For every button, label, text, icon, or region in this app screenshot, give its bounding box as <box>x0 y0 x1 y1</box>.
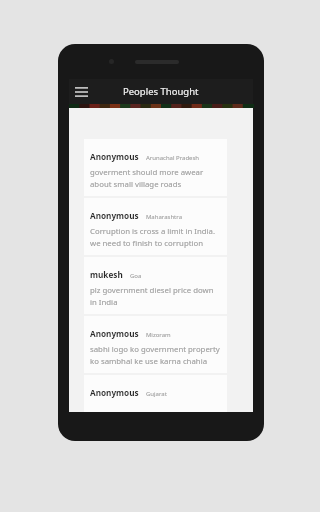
staticText: goverment should more awear about small … <box>90 167 222 190</box>
staticText: Peoples Thought <box>123 85 199 98</box>
staticText: sabhi logo ko government property ko sam… <box>90 344 222 367</box>
staticText: Anonymous Gujarat <box>90 381 167 400</box>
button[interactable]: Anonymous Arunachal Pradesh <box>84 139 227 196</box>
staticText: Anonymous Maharashtra <box>90 204 182 223</box>
button[interactable]: Anonymous Maharashtra <box>84 198 227 255</box>
staticText: Anonymous Mizoram <box>90 322 171 341</box>
button[interactable]: Open navigation drawer <box>71 81 92 102</box>
button[interactable]: Anonymous Mizoram <box>84 316 227 373</box>
button[interactable]: mukesh Goa <box>84 257 227 314</box>
staticText: Anonymous Arunachal Pradesh <box>90 145 200 164</box>
staticText: mukesh Goa <box>90 263 142 282</box>
staticText: Corruption is cross a limit in India. we… <box>90 226 222 249</box>
button[interactable]: Anonymous Gujarat <box>84 375 227 412</box>
staticText: plz government diesel price down in Indi… <box>90 285 222 308</box>
